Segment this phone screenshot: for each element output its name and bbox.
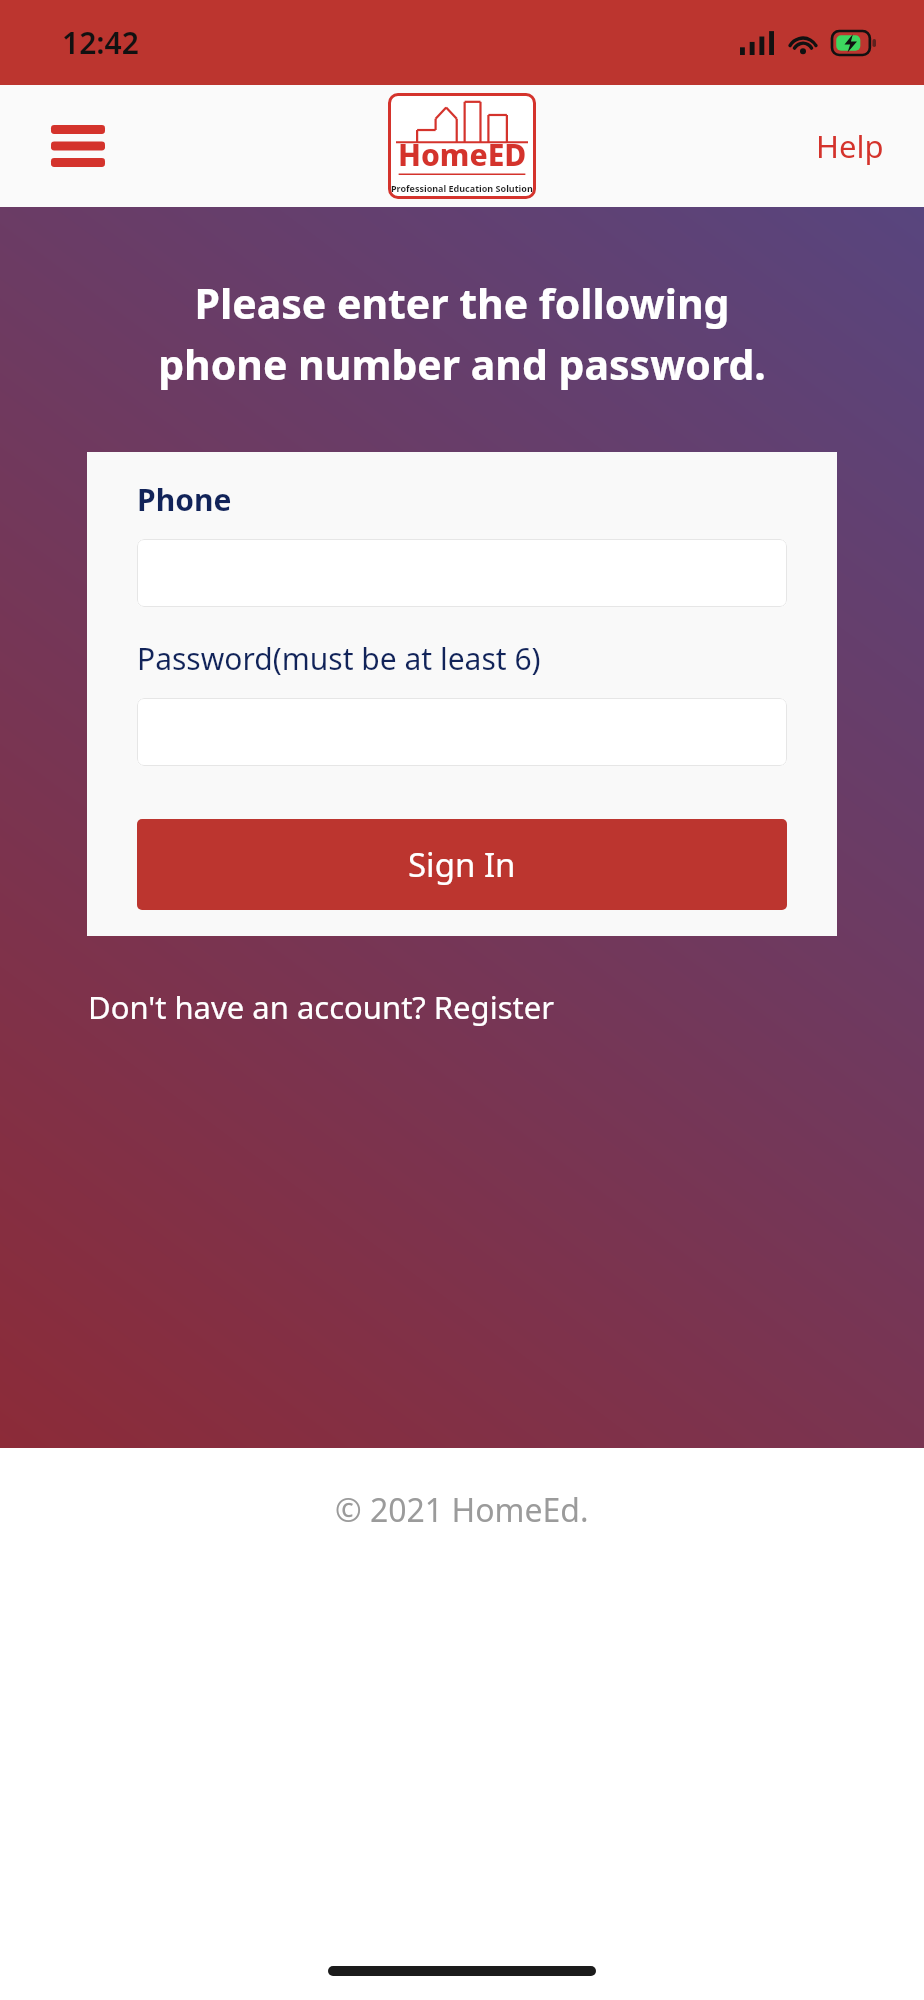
button[interactable]: Help [802,115,898,177]
button[interactable]: Sign In [137,819,787,910]
button[interactable]: HomeED logo [388,93,536,199]
staticText: Don't have an account? Register [88,986,554,1028]
staticText: Phone [137,479,232,520]
button[interactable] [137,698,787,766]
staticText: 12:42 [62,22,139,63]
staticText: Professional Education Solution [391,182,533,194]
staticText: Password(must be at least 6) [137,638,541,679]
staticText: © 2021 HomeEd. [335,1488,589,1532]
staticText: Help [816,125,884,167]
button[interactable]: Menu [40,114,116,178]
staticText: Sign In [408,842,516,887]
staticText: HomeED [398,134,527,175]
button[interactable] [137,539,787,607]
button[interactable]: Don't have an account? Register [74,978,568,1036]
staticText: Please enter the following phone number … [158,275,766,392]
